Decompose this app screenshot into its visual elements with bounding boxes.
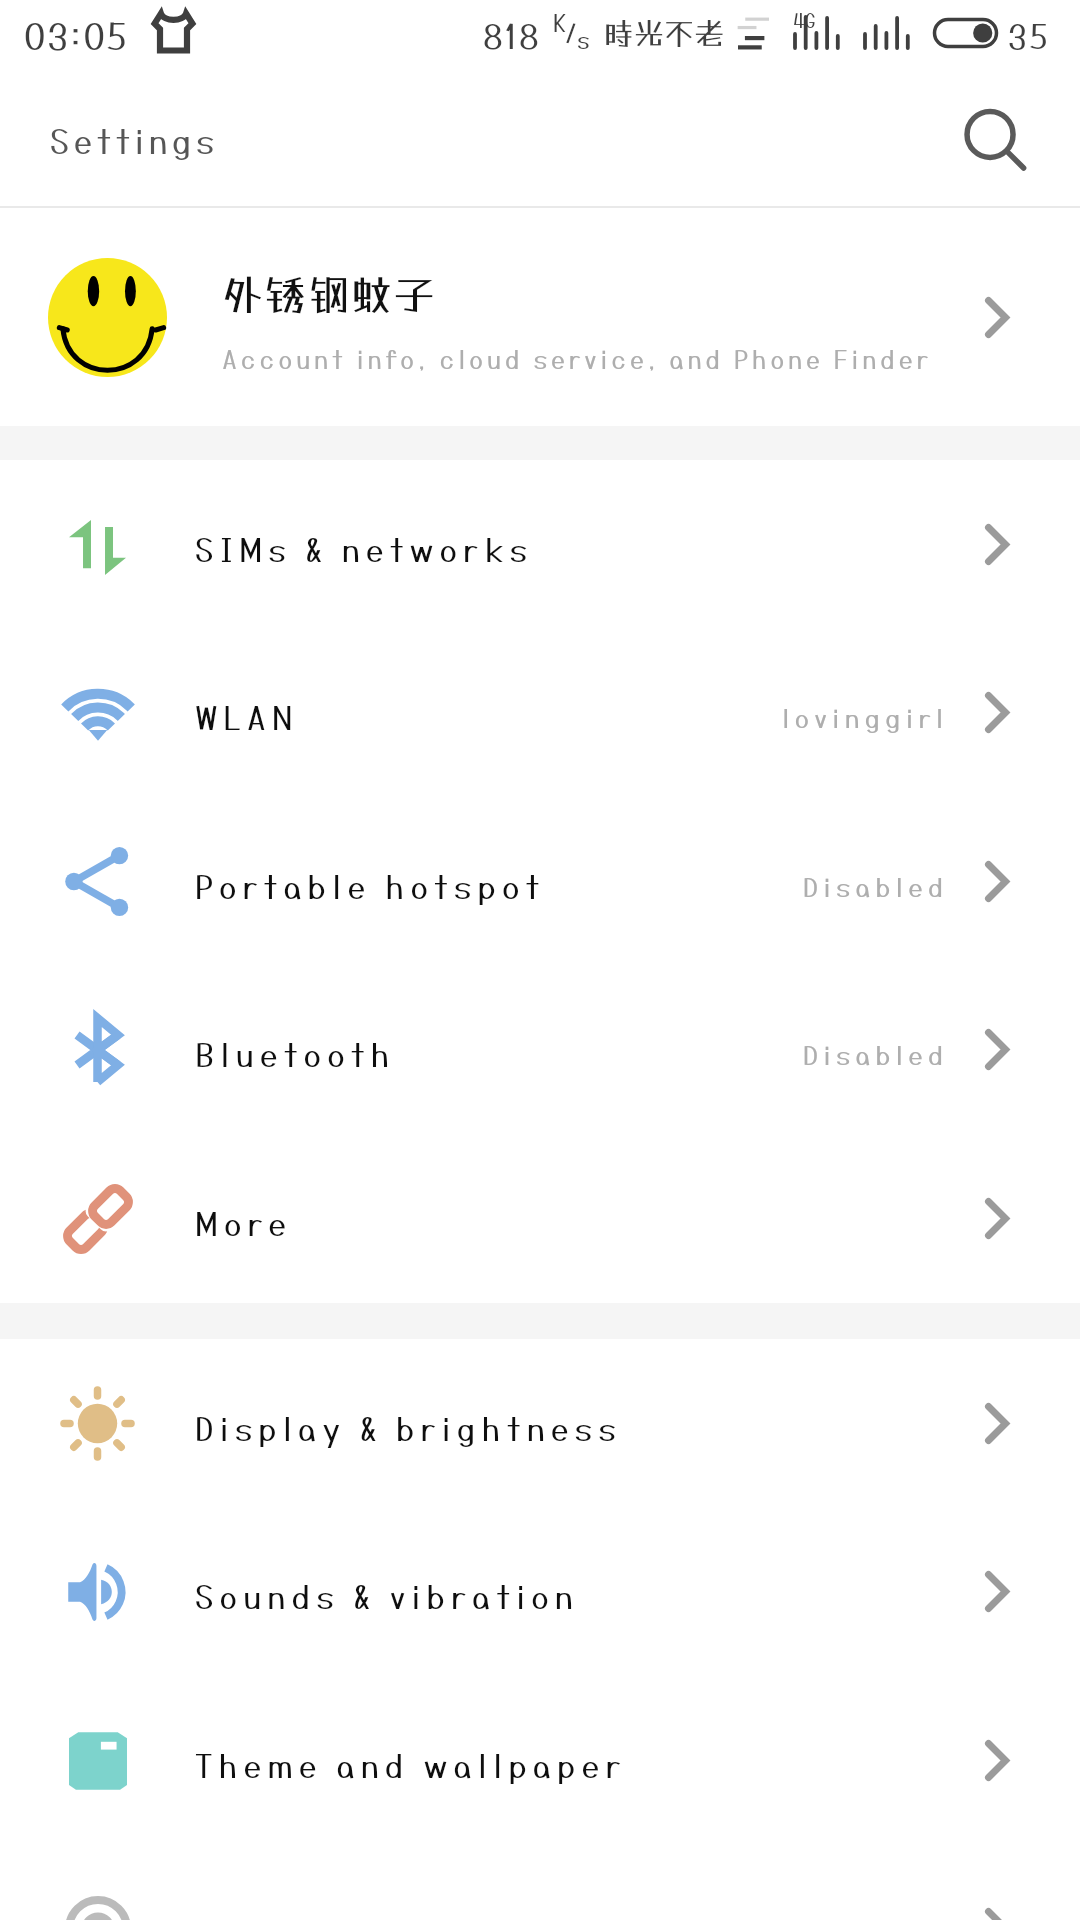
staticText: SIMs & networks — [195, 531, 534, 569]
staticText: 03:05 — [24, 15, 129, 57]
staticText: 818 — [483, 17, 541, 56]
staticText: 35 — [1008, 17, 1051, 56]
button[interactable]: Sounds & vibration — [0, 1507, 1080, 1676]
button[interactable]: Theme and wallpaper — [0, 1676, 1080, 1845]
staticText: Settings — [50, 122, 219, 161]
staticText: 4G — [793, 9, 816, 31]
button[interactable]: SIMs & networks — [0, 460, 1080, 629]
button[interactable]: Apps — [0, 1844, 1080, 1920]
staticText: Disabled — [803, 871, 949, 902]
button[interactable]: Display & brightness — [0, 1339, 1080, 1508]
staticText: WLAN — [195, 699, 299, 737]
staticText: Disabled — [803, 1039, 949, 1070]
staticText: Theme and wallpaper — [195, 1747, 627, 1785]
staticText: More — [195, 1205, 293, 1243]
button[interactable]: 外锈钢蚊子 — [0, 208, 1080, 426]
staticText: Portable hotspot — [195, 868, 546, 906]
staticText: s — [577, 26, 590, 53]
staticText: 外锈钢蚊子 — [222, 270, 437, 320]
staticText: Account info, cloud service, and Phone F… — [222, 344, 932, 373]
staticText: K — [553, 9, 567, 36]
button[interactable]: Bluetooth — [0, 965, 1080, 1134]
button[interactable]: Portable hotspot — [0, 797, 1080, 966]
staticText: lovinggirl — [782, 702, 949, 733]
staticText: 時光不老 — [604, 16, 724, 51]
staticText: Sounds & vibration — [195, 1578, 579, 1616]
staticText: / — [564, 17, 578, 48]
staticText: Display & brightness — [195, 1410, 622, 1448]
button[interactable]: More — [0, 1134, 1080, 1303]
staticText: Bluetooth — [195, 1036, 396, 1074]
button[interactable]: Search — [956, 103, 1032, 179]
button[interactable]: WLAN — [0, 628, 1080, 797]
